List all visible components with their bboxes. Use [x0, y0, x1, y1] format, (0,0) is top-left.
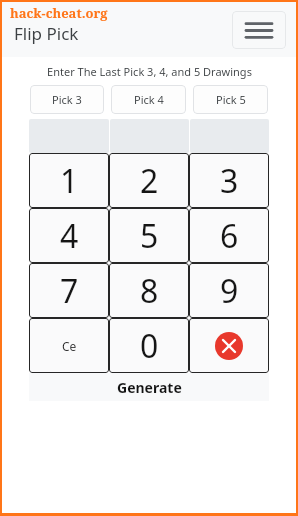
staticText: Generate: [117, 378, 182, 397]
staticText: Pick 5: [216, 92, 246, 107]
button[interactable]: Pick 3: [30, 85, 104, 114]
staticText: 2: [140, 159, 159, 203]
staticText: 1: [60, 159, 79, 203]
staticText: Flip Pick: [14, 22, 79, 45]
button[interactable]: Ce: [29, 318, 109, 373]
button[interactable]: 5: [109, 208, 189, 263]
button[interactable]: 3: [189, 153, 269, 208]
button[interactable]: 4: [29, 208, 109, 263]
button[interactable]: 8: [109, 263, 189, 318]
staticText: hack-cheat.org: [10, 4, 108, 22]
staticText: Ce: [62, 338, 77, 354]
button[interactable]: 1: [29, 153, 109, 208]
button[interactable]: Pick 5: [193, 85, 268, 114]
button[interactable]: 2: [109, 153, 189, 208]
staticText: 6: [220, 214, 239, 258]
staticText: Pick 3: [52, 92, 82, 107]
staticText: 4: [60, 214, 79, 258]
button[interactable]: Generate: [29, 373, 269, 401]
staticText: 3: [220, 159, 239, 203]
button[interactable]: Pick 4: [111, 85, 186, 114]
staticText: Enter The Last Pick 3, 4, and 5 Drawings: [47, 64, 252, 79]
staticText: Pick 4: [134, 92, 164, 107]
staticText: 7: [60, 269, 79, 313]
staticText: 8: [140, 269, 159, 313]
staticText: 0: [140, 324, 159, 368]
staticText: 5: [140, 214, 159, 258]
staticText: 9: [220, 269, 239, 313]
button[interactable]: 7: [29, 263, 109, 318]
button[interactable]: 6: [189, 208, 269, 263]
button[interactable]: 9: [189, 263, 269, 318]
button[interactable]: 0: [109, 318, 189, 373]
button[interactable]: Menu: [232, 11, 286, 49]
button[interactable]: Delete: [189, 318, 269, 373]
